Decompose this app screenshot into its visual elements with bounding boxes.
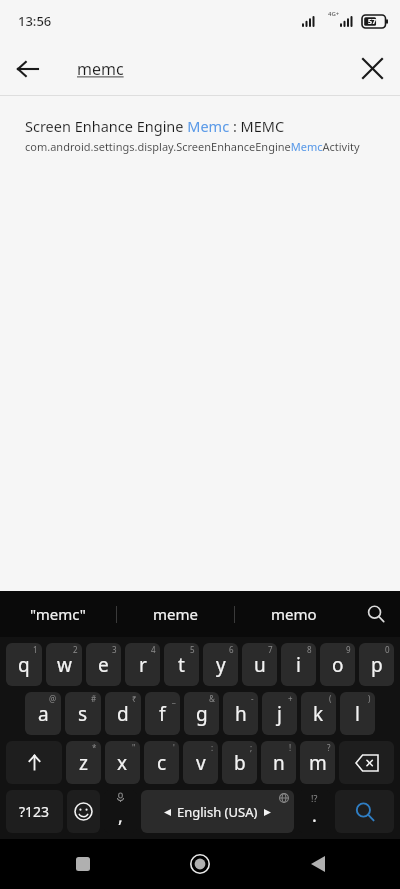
staticText: e [98,652,109,678]
button[interactable]: Shift [6,741,62,784]
button[interactable]: Search suggestions [352,591,400,637]
button[interactable]: Screen Enhance Engine Memc : MEMC [0,96,400,164]
staticText: memo [271,604,317,624]
staticText: 2 [73,644,78,655]
button[interactable]: h [223,692,258,735]
staticText: - [251,693,254,704]
button[interactable]: x [105,741,140,784]
staticText: c [157,750,167,776]
staticText: 13:56 [18,12,52,30]
staticText: : [211,742,214,753]
button[interactable]: Clear search [344,42,400,95]
button[interactable]: w [46,643,82,686]
button[interactable]: t [164,643,199,686]
button[interactable]: q [6,643,42,686]
staticText: English (USA) [177,803,258,821]
button[interactable]: o [320,643,355,686]
button[interactable]: Home [165,839,235,889]
staticText: + [288,693,293,704]
staticText: ) [368,693,371,704]
staticText: * [92,742,97,753]
staticText: com.android.settings.display.ScreenEnhan… [25,139,360,154]
button[interactable]: Back [283,839,353,889]
button[interactable]: i [281,643,316,686]
staticText: 6 [229,644,234,655]
staticText: 0 [385,644,390,655]
button[interactable]: e [86,643,121,686]
staticText: 4G+ [328,10,340,18]
staticText: h [235,701,247,727]
button[interactable]: English (USA) [141,790,294,833]
button[interactable]: f [145,692,180,735]
staticText: j [277,701,282,727]
button[interactable]: Comma, voice input [104,790,137,833]
button[interactable]: m [300,741,335,784]
staticText: " [132,742,136,753]
staticText: ₹ [132,693,137,704]
button[interactable]: l [340,692,375,735]
staticText: w [57,652,72,678]
staticText: "memc" [30,604,86,624]
button[interactable]: Back [0,42,56,95]
staticText: ?123 [19,802,50,821]
staticText: 4 [151,644,156,655]
button[interactable]: Period [298,790,331,833]
staticText: meme [153,604,198,624]
staticText: memc [77,58,124,80]
staticText: l [355,701,360,727]
button[interactable]: meme [117,591,234,637]
button[interactable]: z [66,741,101,784]
button[interactable]: c [144,741,179,784]
staticText: 8 [307,644,312,655]
staticText: _ [172,693,176,704]
button[interactable]: a [25,692,61,735]
staticText: , [118,804,123,829]
staticText: u [254,652,266,678]
button[interactable]: Search [335,790,394,833]
button[interactable]: n [261,741,296,784]
button[interactable]: r [125,643,160,686]
button[interactable]: p [359,643,394,686]
staticText: n [273,750,285,776]
button[interactable]: d [105,692,141,735]
staticText: 7 [268,644,273,655]
button[interactable]: memo [235,591,352,637]
staticText: 9 [346,644,351,655]
staticText: ; [250,742,253,753]
button[interactable]: j [262,692,297,735]
staticText: ' [173,742,175,753]
staticText: f [159,701,166,727]
staticText: t [178,652,185,678]
staticText: 3 [112,644,117,655]
button[interactable]: v [183,741,218,784]
staticText: ? [327,742,331,753]
staticText: m [309,750,327,776]
staticText: . [312,803,317,828]
button[interactable]: b [222,741,257,784]
button[interactable]: y [203,643,238,686]
button[interactable]: s [65,692,101,735]
staticText: Screen Enhance Engine Memc : MEMC [25,116,285,136]
staticText: 1 [33,644,38,655]
staticText: & [209,693,215,704]
button[interactable]: u [242,643,277,686]
staticText: 5 [190,644,195,655]
staticText: p [371,652,383,678]
button[interactable]: memc [56,58,344,80]
button[interactable]: k [301,692,336,735]
staticText: # [91,693,97,704]
button[interactable]: Recent apps [48,839,118,889]
staticText: v [196,750,206,776]
staticText: d [117,701,129,727]
button[interactable]: "memc" [0,591,116,637]
staticText: a [38,701,49,727]
button[interactable]: ?123 [6,790,63,833]
staticText: s [78,701,88,727]
staticText: k [313,701,324,727]
button[interactable]: Emoji [67,790,100,833]
button[interactable]: Backspace [339,741,394,784]
button[interactable]: g [184,692,219,735]
staticText: ( [329,693,332,704]
staticText: i [296,652,301,678]
staticText: 57 [368,17,377,27]
